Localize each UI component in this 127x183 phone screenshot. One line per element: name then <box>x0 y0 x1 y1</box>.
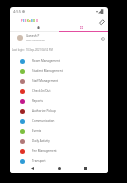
button[interactable]: Student Management <box>20 66 108 76</box>
button[interactable]: Home tab <box>10 23 59 31</box>
button[interactable]: Home <box>55 164 64 173</box>
staticText: 4:55 <box>13 9 21 14</box>
staticText: Check In/Out <box>32 89 51 93</box>
button[interactable]: Menu tab <box>59 23 108 31</box>
staticText: B <box>31 19 33 23</box>
button[interactable]: Logout <box>99 35 106 42</box>
staticText: Staff Management <box>32 79 59 83</box>
staticText: Communication <box>32 119 55 123</box>
staticText: O <box>36 19 39 23</box>
button[interactable]: Daily Activity <box>20 136 108 146</box>
staticText: K <box>27 19 29 23</box>
button[interactable]: Edit <box>97 17 106 26</box>
button[interactable]: Reports <box>20 96 108 106</box>
button[interactable]: Staff Management <box>20 76 108 86</box>
staticText: Fee Management <box>32 149 57 153</box>
staticText: O <box>33 19 36 23</box>
staticText: Ganesh P <box>26 34 40 38</box>
staticText: ▾◢▊ <box>96 9 105 14</box>
staticText: Reports <box>32 99 43 103</box>
button[interactable]: Check In/Out <box>20 86 108 96</box>
button[interactable]: Authorize Pickup <box>20 106 108 116</box>
button[interactable]: Fee Management <box>20 146 108 156</box>
button[interactable]: Communication <box>20 116 108 126</box>
staticText: Authorize Pickup <box>32 109 56 113</box>
staticText: E <box>25 19 27 23</box>
button[interactable]: Events <box>20 126 108 136</box>
button[interactable]: Back <box>28 164 37 173</box>
staticText: Student Management <box>32 69 63 73</box>
button[interactable]: Recents <box>81 164 90 173</box>
staticText: Daily Activity <box>32 139 50 143</box>
staticText: Events <box>32 129 42 133</box>
staticText: E <box>23 19 25 23</box>
staticText: Transport <box>32 159 46 163</box>
staticText: a <box>29 19 31 23</box>
staticText: Room Management <box>32 59 60 63</box>
staticText: Super Administrator <box>26 39 46 42</box>
button[interactable]: Room Management <box>20 56 108 66</box>
button[interactable]: Ganesh P <box>17 32 106 44</box>
button[interactable]: Transport <box>20 156 108 166</box>
staticText: Last login : 10-Sep-2021 04:52 PM <box>12 48 53 52</box>
staticText: P <box>21 19 23 23</box>
